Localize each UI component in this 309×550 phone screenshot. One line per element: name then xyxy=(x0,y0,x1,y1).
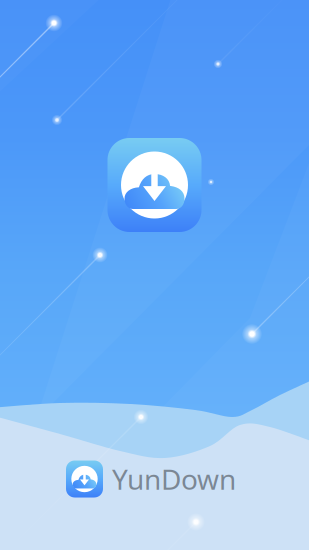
staticText: YunDown xyxy=(112,460,236,498)
